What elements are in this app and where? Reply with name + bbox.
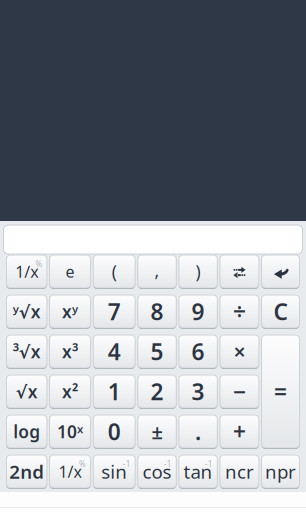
button[interactable]: = <box>261 335 299 448</box>
button[interactable]: 10ˣ <box>49 415 90 448</box>
button[interactable]: 2 <box>138 375 176 408</box>
staticText: = <box>274 376 287 406</box>
staticText: sin <box>101 459 127 484</box>
staticText: ncr <box>225 459 254 484</box>
staticText: ) <box>196 260 201 283</box>
staticText: 1 <box>108 376 121 406</box>
staticText: 3 <box>192 376 205 406</box>
button[interactable]: ʸ√x <box>6 295 47 328</box>
button[interactable]: × <box>220 335 259 368</box>
staticText: -1 <box>205 458 213 469</box>
button[interactable]: ± <box>138 415 176 448</box>
staticText: 5 <box>150 336 163 366</box>
button[interactable]: 2nd <box>6 455 47 488</box>
staticText: 8 <box>150 296 163 326</box>
button[interactable]: , <box>138 255 176 288</box>
button[interactable]: 3 <box>179 375 217 408</box>
staticText: √x <box>16 380 38 403</box>
button[interactable]: 9 <box>179 295 217 328</box>
staticText: . <box>195 416 201 446</box>
button[interactable]: -1 <box>138 455 176 488</box>
button[interactable]: -1 <box>179 455 217 488</box>
staticText: 6 <box>192 336 205 366</box>
staticText: npr <box>265 459 296 484</box>
button[interactable]: ( <box>93 255 135 288</box>
button[interactable]: 8 <box>138 295 176 328</box>
button[interactable]: ÷ <box>220 295 259 328</box>
staticText: ³√x <box>13 340 41 363</box>
button[interactable]: 4 <box>93 335 135 368</box>
staticText: ʸ√x <box>13 300 41 323</box>
button[interactable]: ³√x <box>6 335 47 368</box>
staticText: 2 <box>150 376 163 406</box>
button[interactable]: -1 <box>93 455 135 488</box>
button[interactable]: log <box>6 415 47 448</box>
staticText: xʸ <box>62 300 78 323</box>
staticText: − <box>233 376 246 406</box>
staticText: × <box>233 337 245 366</box>
button[interactable]: √x <box>6 375 47 408</box>
staticText: 2nd <box>9 459 44 484</box>
button[interactable]: % <box>6 255 47 288</box>
staticText: + <box>233 416 246 446</box>
staticText: x² <box>62 380 78 403</box>
button[interactable]: 1 <box>93 375 135 408</box>
button[interactable]: 6 <box>179 335 217 368</box>
button[interactable]: 5 <box>138 335 176 368</box>
staticText: 7 <box>108 296 121 326</box>
staticText: , <box>154 259 159 282</box>
staticText: % <box>35 258 42 269</box>
button[interactable]: xʸ <box>49 295 90 328</box>
button[interactable]: x² <box>49 375 90 408</box>
button[interactable]: + <box>220 415 259 448</box>
staticText: log <box>13 420 40 443</box>
button[interactable]: 0 <box>93 415 135 448</box>
button[interactable]: Swap <box>220 255 259 288</box>
staticText: ( <box>112 260 117 283</box>
staticText: -1 <box>164 458 172 469</box>
staticText: x³ <box>62 340 78 363</box>
staticText: ± <box>151 418 162 445</box>
button[interactable]: − <box>220 375 259 408</box>
staticText: tan <box>184 459 213 484</box>
staticText: 1/x <box>15 261 38 282</box>
button[interactable]: x³ <box>49 335 90 368</box>
button[interactable]: npr <box>261 455 299 488</box>
staticText: 0 <box>108 416 121 446</box>
staticText: 10ˣ <box>57 420 83 443</box>
button[interactable]: ) <box>179 255 217 288</box>
staticText: % <box>79 458 86 469</box>
staticText: ÷ <box>233 296 246 326</box>
button[interactable]: % <box>49 455 90 488</box>
staticText: 1/x <box>58 461 81 482</box>
button[interactable]: 7 <box>93 295 135 328</box>
button[interactable]: ncr <box>220 455 259 488</box>
staticText: cos <box>142 459 171 484</box>
button[interactable]: e <box>49 255 90 288</box>
button[interactable]: Backspace <box>261 255 299 288</box>
staticText: 9 <box>192 296 205 326</box>
staticText: -1 <box>123 458 131 469</box>
staticText: C <box>273 296 287 326</box>
button[interactable]: . <box>179 415 217 448</box>
button[interactable]: C <box>261 295 299 328</box>
staticText: e <box>65 261 74 282</box>
staticText: 4 <box>108 336 121 366</box>
